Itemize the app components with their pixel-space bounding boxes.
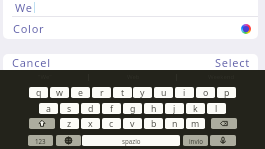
button[interactable]: We [3, 0, 258, 17]
staticText: Cancel [12, 55, 51, 69]
staticText: Color [13, 21, 45, 36]
staticText: 123 [35, 137, 46, 145]
button[interactable]: p [217, 87, 236, 98]
staticText: f [110, 103, 114, 114]
button[interactable]: t [113, 87, 132, 98]
button[interactable]: l [207, 103, 226, 114]
button[interactable]: invio [183, 135, 208, 146]
button[interactable]: w [50, 87, 69, 98]
staticText: b [151, 118, 157, 129]
button[interactable]: v [123, 118, 142, 129]
button[interactable]: Change keyboard [56, 135, 81, 146]
staticText: Select [215, 55, 251, 69]
staticText: n [172, 118, 178, 129]
staticText: h [151, 103, 157, 114]
staticText: w [56, 87, 63, 98]
staticText: c [109, 118, 114, 129]
button[interactable]: Backspace [211, 118, 237, 129]
staticText: d [88, 103, 94, 114]
staticText: e [78, 87, 83, 98]
button[interactable]: Pick colour [241, 24, 251, 34]
staticText: q [36, 87, 42, 98]
staticText: o [203, 87, 209, 98]
button[interactable]: b [144, 118, 163, 129]
button[interactable]: o [196, 87, 215, 98]
button[interactable]: e [71, 87, 90, 98]
button[interactable]: r [92, 87, 111, 98]
button[interactable]: x [81, 118, 100, 129]
staticText: j [173, 103, 176, 114]
staticText: l [215, 103, 218, 114]
staticText: x [88, 118, 93, 129]
button[interactable]: j [165, 103, 184, 114]
staticText: v [130, 118, 135, 129]
button[interactable]: Select [209, 54, 257, 72]
staticText: u [161, 87, 167, 98]
staticText: t [121, 87, 125, 98]
staticText: We [15, 0, 33, 15]
button[interactable]: c [102, 118, 121, 129]
staticText: s [67, 103, 72, 114]
staticText: k [193, 103, 198, 114]
button[interactable]: 123 [28, 135, 53, 146]
button[interactable]: q [29, 87, 48, 98]
button[interactable]: z [60, 118, 79, 129]
button[interactable]: i [175, 87, 194, 98]
button[interactable]: y [133, 87, 152, 98]
button[interactable]: a [39, 103, 58, 114]
button[interactable]: u [154, 87, 173, 98]
staticText: m [191, 118, 200, 129]
staticText: a [46, 103, 51, 114]
button[interactable]: m [186, 118, 205, 129]
staticText: i [183, 87, 186, 98]
staticText: z [67, 118, 72, 129]
button[interactable]: s [60, 103, 79, 114]
button[interactable]: g [123, 103, 142, 114]
button[interactable]: Dictate [210, 135, 236, 146]
button[interactable]: spazio [82, 135, 180, 146]
button[interactable]: Shift [29, 118, 55, 129]
button[interactable]: h [144, 103, 163, 114]
button[interactable]: Color [3, 17, 258, 39]
staticText: y [140, 87, 145, 98]
button[interactable]: k [186, 103, 205, 114]
button[interactable]: d [81, 103, 100, 114]
staticText: invio [189, 137, 203, 145]
button[interactable]: f [102, 103, 121, 114]
staticText: spazio [122, 137, 141, 145]
button[interactable]: Cancel [3, 54, 60, 72]
button[interactable]: n [165, 118, 184, 129]
staticText: p [224, 87, 230, 98]
staticText: g [130, 103, 136, 114]
staticText: r [100, 87, 104, 98]
